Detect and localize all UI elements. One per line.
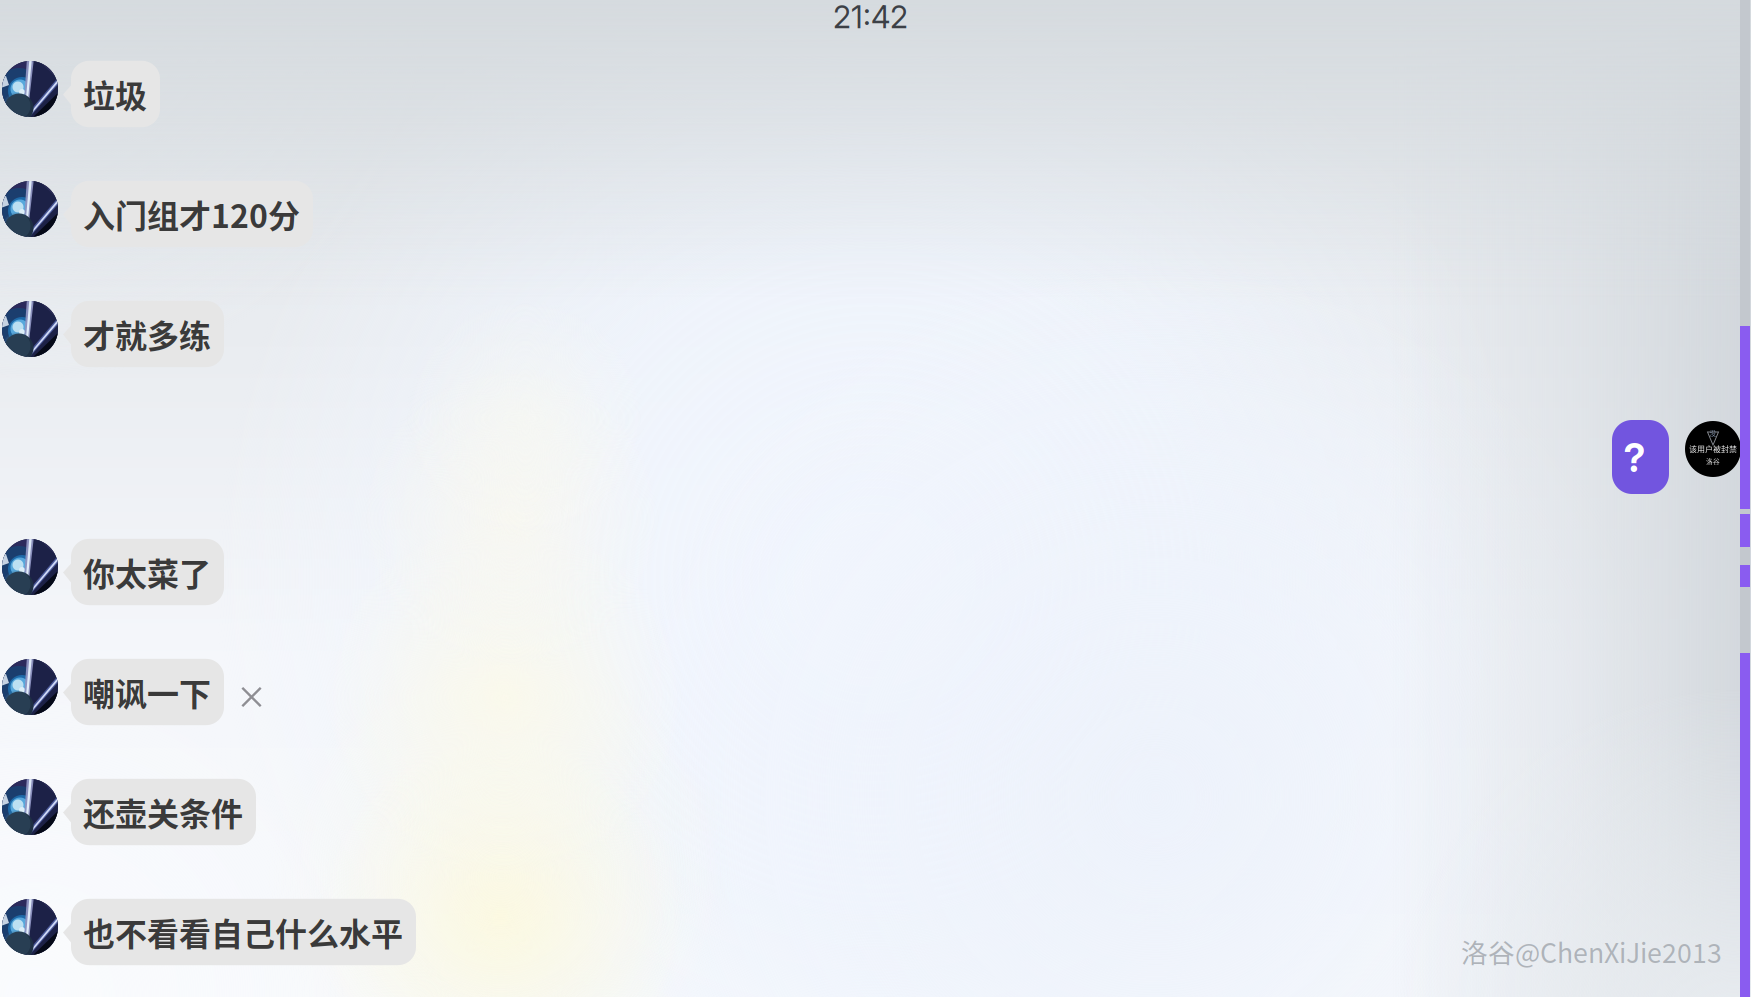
- button[interactable]: 该用户被封禁: [1685, 421, 1741, 477]
- staticText: 洛谷: [1706, 457, 1720, 466]
- button[interactable]: 入门组才120分: [63, 181, 313, 247]
- button[interactable]: 你太菜了: [63, 539, 224, 605]
- staticText: 21:42: [833, 0, 908, 35]
- staticText: 该用户被封禁: [1689, 443, 1737, 455]
- button[interactable]: 才就多练: [63, 301, 224, 367]
- button[interactable]: 垃圾: [63, 61, 160, 127]
- button[interactable]: 也不看看自己什么水平: [63, 899, 416, 965]
- staticText: 嘲讽一下: [83, 669, 211, 715]
- staticText: 入门组才120分: [83, 191, 300, 237]
- staticText: 还壶关条件: [83, 789, 243, 835]
- button[interactable]: Sender avatar: [2, 301, 58, 357]
- button[interactable]: Sender avatar: [2, 181, 58, 237]
- button[interactable]: 还壶关条件: [63, 779, 256, 845]
- staticText: 没: [1709, 428, 1716, 438]
- button[interactable]: Help: [1612, 420, 1669, 494]
- button[interactable]: Sender avatar: [2, 779, 58, 835]
- staticText: 你太菜了: [83, 549, 211, 595]
- staticText: 垃圾: [83, 71, 147, 117]
- button[interactable]: Sender avatar: [2, 899, 58, 955]
- button[interactable]: 嘲讽一下: [63, 659, 224, 725]
- staticText: ?: [1623, 435, 1645, 481]
- staticText: 才就多练: [83, 311, 211, 357]
- button[interactable]: Sender avatar: [2, 539, 58, 595]
- button[interactable]: Dismiss: [231, 676, 272, 717]
- staticText: 也不看看自己什么水平: [83, 909, 403, 955]
- staticText: 洛谷@ChenXiJie2013: [1461, 932, 1722, 971]
- button[interactable]: Sender avatar: [2, 61, 58, 117]
- button[interactable]: Sender avatar: [2, 659, 58, 715]
